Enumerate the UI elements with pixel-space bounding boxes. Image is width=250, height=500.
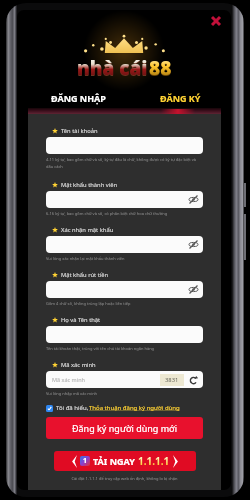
button[interactable] bbox=[46, 236, 203, 253]
staticText: Tên tài khoản bbox=[61, 127, 98, 135]
staticText: Đăng ký người dùng mới bbox=[72, 422, 177, 434]
button[interactable] bbox=[46, 191, 203, 208]
staticText: Gồm 4 chữ số, không trùng lặp hoặc liên … bbox=[46, 301, 203, 308]
button[interactable]: Refresh captcha bbox=[189, 376, 198, 385]
staticText: Mật khẩu thành viên bbox=[61, 181, 118, 189]
staticText: nhà cái bbox=[77, 55, 148, 81]
button[interactable]: 1 bbox=[54, 451, 196, 471]
staticText: 4-11 ký tự, bao gồm chữ và số, ký tự đầu… bbox=[46, 157, 203, 171]
staticText: Mã xác minh bbox=[61, 361, 96, 369]
staticText: 6-16 ký tự, bao gồm chữ và số, có phân b… bbox=[46, 211, 203, 218]
staticText: Tôi đã hiểu, bbox=[56, 404, 89, 412]
staticText: ĐĂNG NHẬP bbox=[51, 92, 106, 104]
staticText: 1.1.1.1 bbox=[138, 454, 170, 468]
staticText: 88 bbox=[149, 55, 172, 81]
button[interactable]: Tôi đã hiểu, bbox=[46, 404, 203, 412]
button[interactable]: ĐĂNG KÝ bbox=[129, 88, 231, 108]
staticText: Vui lòng nhập mã xác minh bbox=[46, 391, 98, 398]
staticText: Tên tài khoản thật, trùng với tên chủ tà… bbox=[46, 346, 203, 353]
staticText: 88 bbox=[149, 56, 172, 82]
staticText: 1 bbox=[83, 456, 88, 466]
staticText: Họ và Tên thật bbox=[61, 316, 101, 324]
staticText: ĐĂNG KÝ bbox=[160, 92, 201, 104]
button[interactable]: Close bbox=[208, 13, 224, 29]
staticText: 3831 bbox=[165, 376, 179, 384]
staticText: Vui lòng xác nhận lại mật khẩu thành viê… bbox=[46, 256, 203, 263]
staticText: nhà cái bbox=[77, 56, 148, 82]
button[interactable] bbox=[46, 137, 203, 154]
staticText: TẢI NGAY bbox=[93, 455, 135, 467]
button[interactable] bbox=[46, 326, 203, 343]
button[interactable]: Thỏa thuận đăng ký người dùng bbox=[89, 404, 180, 412]
staticText: Mã xác minh bbox=[52, 376, 85, 383]
staticText: Cài đặt 1.1.1.1 để truy cập web ổn định,… bbox=[46, 476, 203, 481]
button[interactable]: Đăng ký người dùng mới bbox=[46, 417, 203, 439]
staticText: Mật khẩu rút tiền bbox=[61, 271, 109, 279]
button[interactable]: ĐĂNG NHẬP bbox=[28, 88, 129, 108]
button[interactable] bbox=[46, 281, 203, 298]
staticText: Xác nhận mật khẩu bbox=[61, 226, 114, 234]
button[interactable]: Mã xác minh bbox=[46, 371, 203, 388]
